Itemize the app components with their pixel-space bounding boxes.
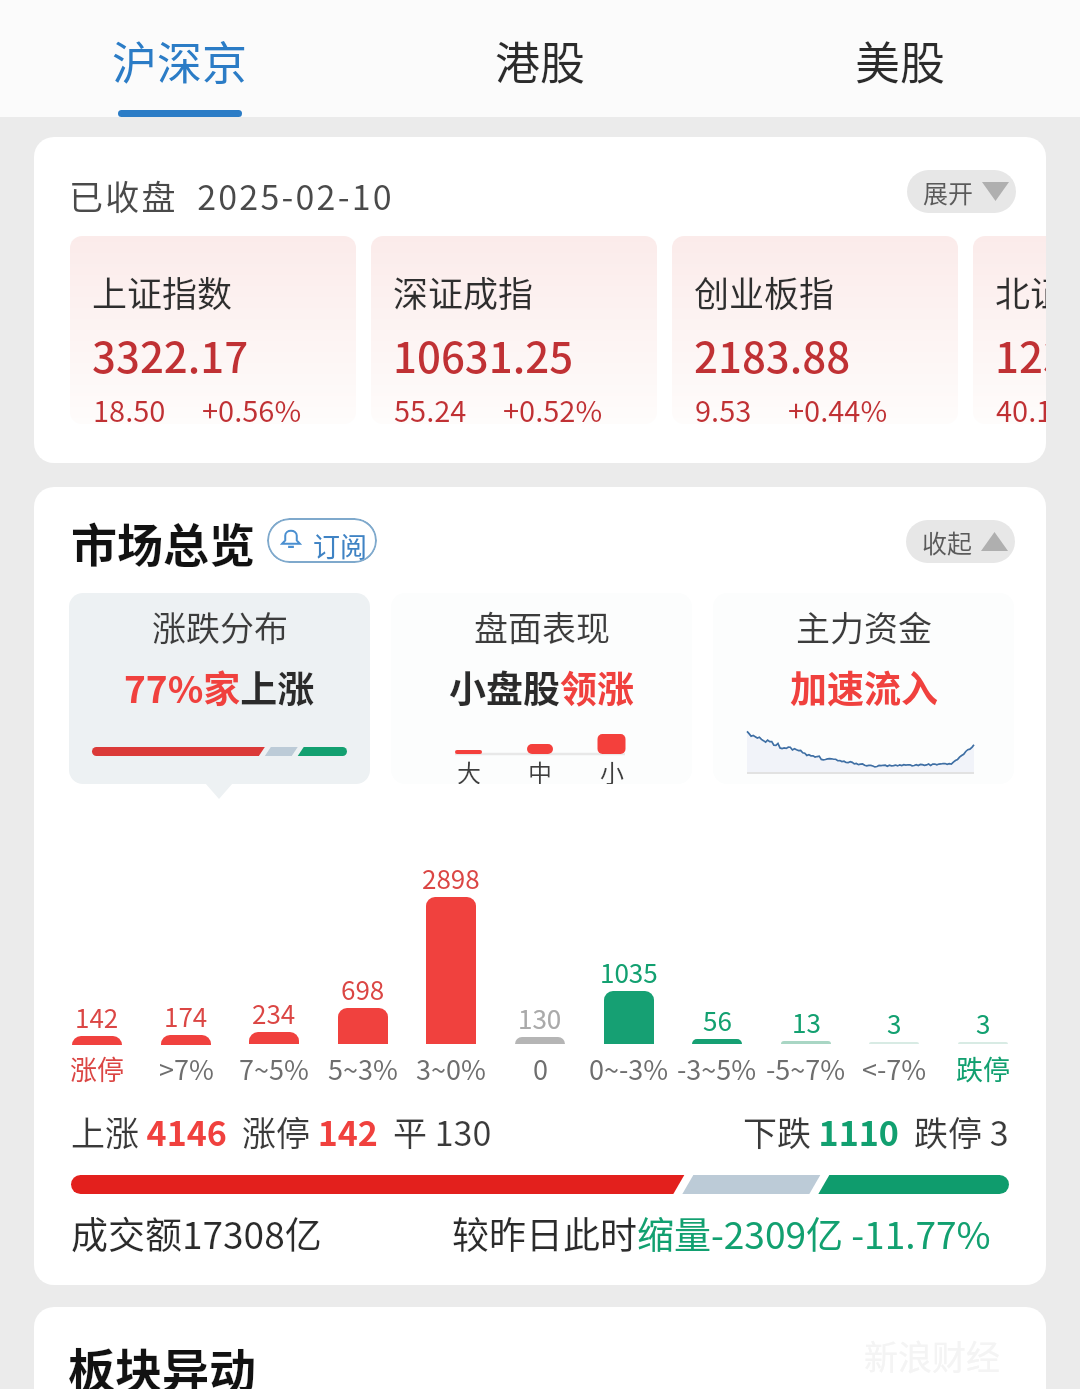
staticText: 1234.56 xyxy=(995,324,1046,385)
button[interactable]: 港股 xyxy=(360,0,720,117)
staticText: 大 xyxy=(457,754,481,784)
staticText: 174 xyxy=(164,997,208,1035)
staticText: -3~5% xyxy=(677,1049,757,1088)
staticText: 涨停 xyxy=(70,1049,124,1088)
staticText: 3 xyxy=(976,1004,991,1042)
button[interactable]: 上证指数 xyxy=(70,236,356,424)
staticText: 加速流入 xyxy=(790,660,938,714)
staticText: 沪深京 xyxy=(112,28,248,93)
staticText: 10631.25 xyxy=(393,324,574,385)
staticText: 小 xyxy=(600,754,624,784)
staticText: +0.52% xyxy=(503,388,603,424)
staticText: 142 xyxy=(75,998,119,1036)
staticText: 美股 xyxy=(855,28,946,93)
button[interactable]: 订阅 xyxy=(267,518,377,563)
button[interactable]: 盘面表现 xyxy=(391,593,692,784)
staticText: 创业板指 xyxy=(694,266,835,317)
staticText: 3~0% xyxy=(416,1049,486,1088)
staticText: 55.24 xyxy=(394,388,467,424)
staticText: 展开 xyxy=(923,174,974,210)
staticText: 7~5% xyxy=(239,1049,309,1088)
staticText: 13 xyxy=(792,1003,821,1041)
staticText: <-7% xyxy=(862,1049,927,1088)
staticText: 港股 xyxy=(495,28,586,93)
staticText: 5~3% xyxy=(328,1049,398,1088)
staticText: 盘面表现 xyxy=(474,602,610,651)
button[interactable]: 收起 xyxy=(906,520,1015,563)
staticText: 0~-3% xyxy=(589,1049,669,1088)
staticText: 698 xyxy=(341,970,385,1008)
staticText: 56 xyxy=(703,1001,732,1039)
button[interactable]: 美股 xyxy=(720,0,1080,117)
staticText: 北证50 xyxy=(995,266,1046,317)
staticText: 市场总览 xyxy=(71,509,255,576)
staticText: 跌停 xyxy=(956,1049,1010,1088)
staticText: 新浪财经 xyxy=(864,1331,1000,1380)
staticText: 77%家上涨 xyxy=(124,660,315,714)
staticText: 2898 xyxy=(422,859,480,897)
staticText: 3322.17 xyxy=(92,324,249,385)
staticText: 234 xyxy=(252,994,296,1032)
staticText: 主力资金 xyxy=(796,602,932,651)
staticText: 涨跌分布 xyxy=(152,602,288,651)
staticText: 0 xyxy=(533,1049,548,1088)
staticText: 中 xyxy=(528,754,552,784)
staticText: 下跌 1110 跌停 3 xyxy=(743,1107,1009,1156)
staticText: 40.12 xyxy=(996,388,1046,424)
staticText: 130 xyxy=(518,999,562,1037)
staticText: 订阅 xyxy=(313,526,367,563)
button[interactable]: 北证50 xyxy=(973,236,1046,424)
button[interactable]: 涨跌分布 xyxy=(69,593,370,784)
button[interactable]: 展开 xyxy=(907,170,1016,213)
button[interactable]: 主力资金 xyxy=(713,593,1014,784)
staticText: -5~7% xyxy=(766,1049,846,1088)
button[interactable]: 沪深京 xyxy=(0,0,360,117)
staticText: 9.53 xyxy=(695,388,752,424)
staticText: 2183.88 xyxy=(694,324,851,385)
staticText: +0.44% xyxy=(788,388,888,424)
staticText: 深证成指 xyxy=(393,266,534,317)
staticText: 18.50 xyxy=(93,388,166,424)
staticText: 小盘股领涨 xyxy=(449,660,634,714)
staticText: 收起 xyxy=(922,524,973,560)
staticText: >7% xyxy=(159,1049,214,1088)
staticText: 板块异动 xyxy=(68,1333,256,1389)
staticText: 已收盘 2025-02-10 xyxy=(69,171,394,220)
staticText: +0.56% xyxy=(202,388,302,424)
button[interactable]: 深证成指 xyxy=(371,236,657,424)
staticText: 较昨日此时缩量-2309亿 -11.77% xyxy=(452,1206,991,1260)
staticText: 成交额17308亿 xyxy=(71,1206,322,1260)
button[interactable]: 创业板指 xyxy=(672,236,958,424)
staticText: 3 xyxy=(887,1004,902,1042)
staticText: 1035 xyxy=(600,953,658,991)
staticText: 上证指数 xyxy=(92,266,233,317)
staticText: 上涨 4146 涨停 142 平 130 xyxy=(71,1107,492,1156)
